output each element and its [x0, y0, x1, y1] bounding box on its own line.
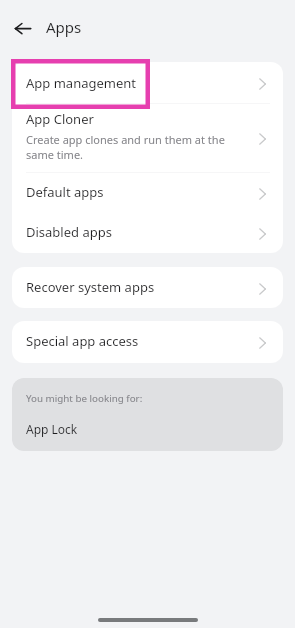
- staticText: Recover system apps: [26, 278, 258, 296]
- button[interactable]: App Lock: [12, 410, 283, 440]
- staticText: App Lock: [26, 421, 78, 437]
- staticText: App Cloner: [26, 110, 94, 128]
- button[interactable]: App management: [12, 62, 283, 103]
- button[interactable]: Special app access: [12, 321, 283, 363]
- button[interactable]: Default apps: [12, 173, 283, 213]
- button[interactable]: Recover system apps: [12, 267, 283, 308]
- button[interactable]: Disabled apps: [12, 213, 283, 253]
- staticText: Special app access: [26, 332, 258, 350]
- staticText: Create app clones and run them at the sa…: [26, 132, 229, 162]
- staticText: App management: [26, 74, 258, 92]
- staticText: Apps: [46, 17, 82, 37]
- staticText: Default apps: [26, 183, 258, 201]
- button[interactable]: App Cloner: [12, 104, 283, 172]
- button[interactable]: Back: [7, 12, 39, 44]
- staticText: Disabled apps: [26, 223, 258, 241]
- staticText: You might be looking for:: [26, 392, 143, 405]
